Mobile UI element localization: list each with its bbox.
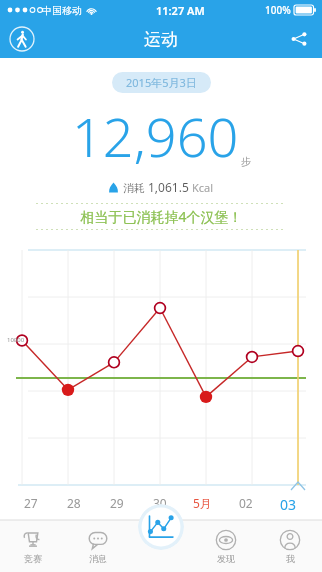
button[interactable]: Sport chart	[138, 504, 184, 550]
staticText: 1,061.5	[148, 179, 192, 195]
staticText: 29	[110, 495, 124, 511]
staticText: 相当于已消耗掉4个汉堡！	[80, 207, 243, 226]
staticText: 30	[153, 495, 167, 511]
staticText: 27	[24, 495, 38, 511]
staticText: 03	[280, 495, 297, 514]
staticText: Kcal	[192, 180, 214, 195]
button[interactable]: 竞赛	[0, 520, 65, 572]
staticText: 消耗	[123, 180, 148, 195]
staticText: 28	[67, 495, 81, 511]
staticText: 5月	[193, 495, 212, 511]
button[interactable]: 2015年5月3日	[112, 72, 211, 93]
staticText: 2015年5月3日	[126, 75, 197, 90]
button[interactable]: Activity	[8, 25, 36, 53]
staticText: 中国移动	[42, 4, 82, 17]
button[interactable]: 发现	[194, 520, 258, 572]
staticText: 10000	[7, 336, 25, 344]
staticText: 100%	[265, 3, 291, 17]
staticText: 消息	[89, 553, 107, 564]
staticText: 步	[241, 155, 251, 168]
button[interactable]: 我	[258, 520, 322, 572]
button[interactable]: Share	[284, 24, 314, 54]
staticText: 我	[286, 553, 295, 564]
staticText: 02	[239, 495, 253, 511]
staticText: 12,960	[72, 99, 239, 173]
staticText: 竞赛	[24, 553, 42, 564]
staticText: 11:27 AM	[156, 3, 205, 18]
staticText: 运动	[144, 29, 178, 50]
staticText: 发现	[217, 553, 235, 564]
button[interactable]: 消息	[65, 520, 130, 572]
